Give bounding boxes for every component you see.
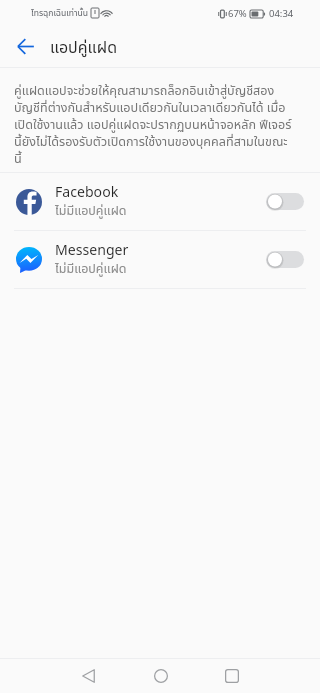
staticText: แอปคู่แฝด [50, 36, 117, 58]
button[interactable]: Toggle app twin [266, 193, 304, 210]
staticText: 04:34 [269, 7, 294, 20]
staticText: ไม่มีแอปคู่แฝด [55, 202, 127, 219]
staticText: Facebook [55, 182, 119, 201]
button[interactable]: Messenger [0, 231, 320, 288]
staticText: 67% [228, 7, 247, 20]
button[interactable]: Back [66, 659, 111, 693]
button[interactable]: Home [138, 659, 183, 693]
button[interactable]: Recent apps [209, 659, 254, 693]
button[interactable]: Toggle app twin [266, 251, 304, 268]
staticText: Messenger [55, 240, 129, 259]
button[interactable]: Facebook [0, 173, 320, 230]
button[interactable]: Back [4, 26, 46, 67]
staticText: โทรฉุกเฉินเท่านั้น [31, 7, 89, 19]
staticText: คู่แฝดแอปจะช่วยให้คุณสามารถล็อกอินเข้าสู… [14, 82, 292, 167]
staticText: ไม่มีแอปคู่แฝด [55, 260, 127, 277]
